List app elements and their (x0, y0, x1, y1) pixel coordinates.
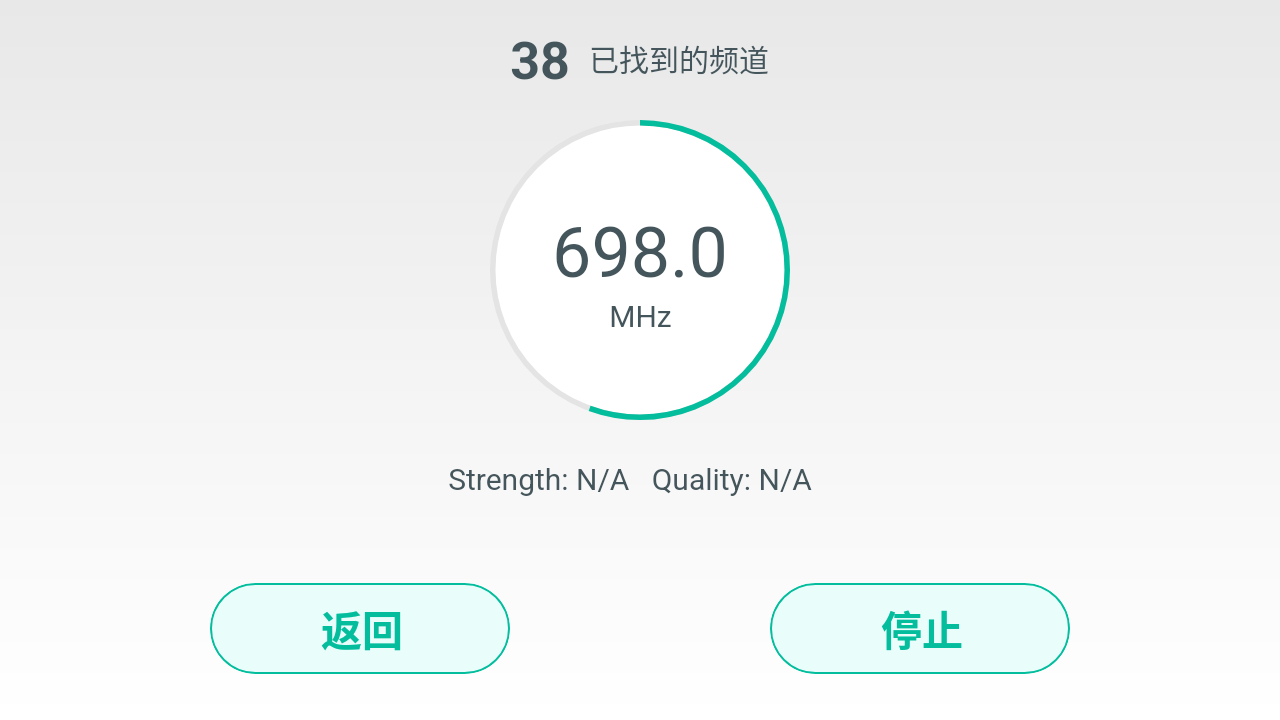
staticText: 停止 (881, 598, 963, 657)
staticText: 38 (510, 31, 570, 92)
button[interactable]: Back (210, 583, 510, 674)
staticText: Strength: N/A Quality: N/A (448, 462, 812, 497)
staticText: 698.0 (552, 212, 728, 294)
staticText: 已找到的频道 (589, 36, 769, 79)
staticText: 返回 (321, 598, 403, 657)
button[interactable]: Stop scanning (770, 583, 1070, 674)
staticText: MHz (609, 299, 672, 334)
